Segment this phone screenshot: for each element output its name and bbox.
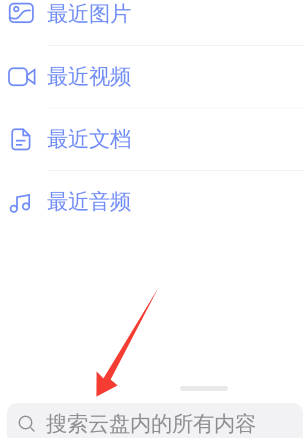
button[interactable]: 最近图片: [0, 0, 303, 28]
button[interactable]: 最近音频: [0, 171, 303, 232]
button[interactable]: 最近文档: [0, 108, 303, 170]
button[interactable]: 搜索云盘内的所有内容: [7, 403, 303, 438]
button[interactable]: 最近视频: [0, 46, 303, 107]
staticText: 最近图片: [47, 1, 131, 27]
staticText: 搜索云盘内的所有内容: [46, 411, 256, 437]
staticText: 最近视频: [47, 64, 131, 90]
staticText: 最近文档: [47, 126, 131, 152]
staticText: 最近音频: [47, 189, 131, 215]
